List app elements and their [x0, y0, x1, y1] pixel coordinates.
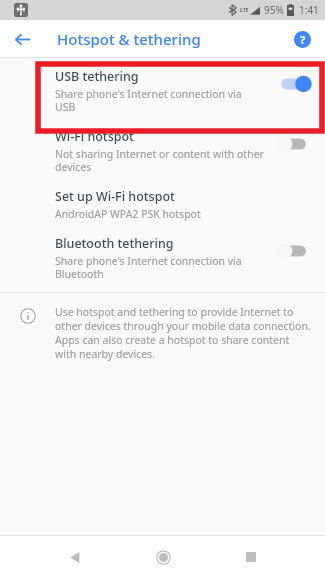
staticText: Share phone's Internet connection via US…	[55, 87, 242, 114]
button[interactable]: Navigate up	[8, 25, 36, 53]
staticText: Hotspot & tethering	[57, 29, 201, 49]
button[interactable]: Home	[148, 542, 178, 572]
button[interactable]: Wi-Fi hotspot	[0, 128, 325, 174]
staticText: Share phone's Internet connection via Bl…	[55, 254, 242, 281]
button[interactable]: Recents	[237, 543, 265, 571]
button[interactable]: USB tethering	[0, 68, 325, 114]
button[interactable]: Set up Wi-Fi hotspot	[0, 188, 325, 221]
staticText: 95%	[264, 3, 284, 17]
button[interactable]: Bluetooth tethering	[0, 235, 325, 281]
button[interactable]: Back	[60, 543, 88, 571]
staticText: Not sharing Internet or content with oth…	[55, 147, 264, 174]
button[interactable]: Turn on Bluetooth tethering	[279, 242, 313, 260]
button[interactable]: Turn on Wi-Fi hotspot	[279, 135, 313, 153]
staticText: 1:41	[299, 3, 319, 17]
staticText: Wi-Fi hotspot	[55, 128, 134, 145]
staticText: Bluetooth tethering	[55, 235, 174, 252]
button[interactable]: Turn off USB tethering	[279, 75, 313, 93]
staticText: Set up Wi-Fi hotspot	[55, 188, 175, 205]
staticText: Use hotspot and tethering to provide Int…	[55, 305, 311, 361]
staticText: ?	[300, 32, 306, 47]
staticText: LTE	[240, 7, 249, 14]
staticText: USB tethering	[55, 68, 139, 85]
staticText: AndroidAP WPA2 PSK hotspot	[55, 207, 201, 221]
button[interactable]: Help	[290, 27, 314, 51]
